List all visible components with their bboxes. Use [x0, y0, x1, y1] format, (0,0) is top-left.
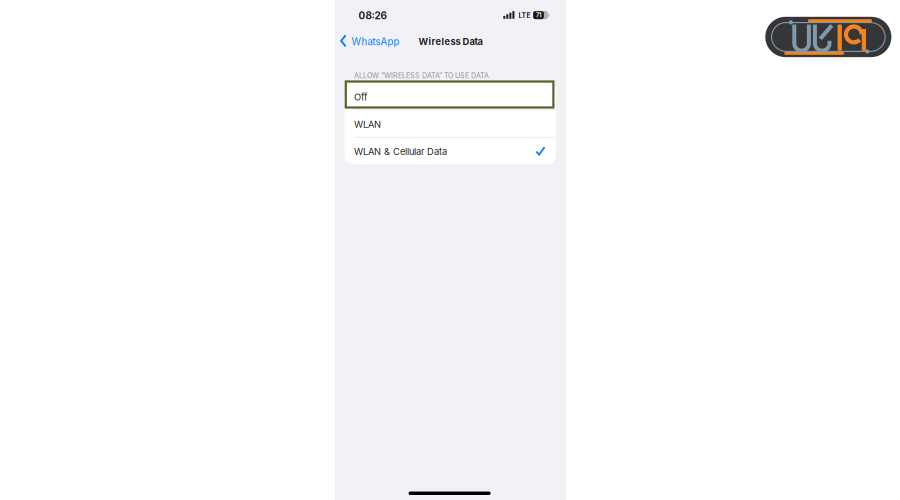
staticText: 71: [536, 12, 541, 18]
button[interactable]: WLAN & Cellular Data: [344, 138, 556, 164]
staticText: WLAN & Cellular Data: [354, 146, 447, 157]
staticText: WhatsApp: [352, 36, 400, 48]
button[interactable]: WLAN: [344, 110, 556, 137]
staticText: Wireless Data: [418, 36, 482, 47]
staticText: Off: [354, 91, 367, 103]
staticText: WLAN: [354, 119, 381, 130]
button[interactable]: Off: [344, 83, 556, 110]
staticText: 08:26: [359, 10, 387, 22]
staticText: LTE: [518, 11, 530, 20]
button[interactable]: WhatsApp: [340, 34, 405, 50]
staticText: ALLOW “WIRELESS DATA” TO USE DATA: [354, 71, 489, 80]
